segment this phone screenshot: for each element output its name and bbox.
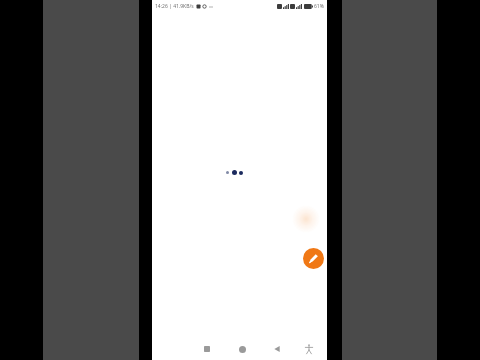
button[interactable]: Compose <box>303 248 324 269</box>
button[interactable]: Back <box>269 341 285 357</box>
staticText: 61% <box>314 3 324 10</box>
staticText: 14:26 | 41.9KB/s <box>155 3 194 10</box>
button[interactable]: Recent apps <box>199 341 215 357</box>
button[interactable]: Home <box>234 341 250 357</box>
button[interactable]: Accessibility <box>300 340 318 358</box>
